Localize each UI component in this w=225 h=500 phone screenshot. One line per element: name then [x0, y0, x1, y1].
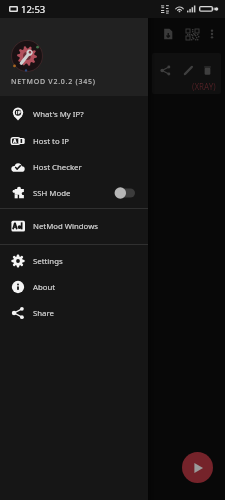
staticText: (XRAY): [192, 81, 216, 92]
button[interactable]: Settings: [0, 248, 148, 274]
button[interactable]: Import config: [157, 23, 179, 45]
button[interactable]: Edit: [180, 62, 196, 78]
button[interactable]: Host to IP: [0, 128, 148, 154]
button[interactable]: NetMod Windows: [0, 213, 148, 239]
staticText: What's My IP?: [33, 109, 84, 120]
button[interactable]: Delete: [199, 62, 215, 78]
staticText: Settings: [33, 256, 63, 267]
button[interactable]: More options: [201, 23, 223, 45]
button[interactable]: SSH Mode: [0, 180, 148, 206]
button[interactable]: Share: [152, 53, 221, 94]
staticText: NETMOD V2.0.2 (345): [11, 77, 96, 87]
staticText: About: [33, 282, 56, 293]
button[interactable]: Host Checker: [0, 154, 148, 180]
staticText: Host Checker: [33, 162, 82, 173]
button[interactable]: Share: [0, 300, 148, 326]
button[interactable]: Scan QR code: [181, 23, 203, 45]
staticText: NetMod Windows: [33, 221, 99, 232]
button[interactable]: Share: [157, 62, 173, 78]
staticText: Host to IP: [33, 136, 69, 147]
button[interactable]: About: [0, 274, 148, 300]
button[interactable]: Connect: [182, 452, 213, 483]
button[interactable]: What's My IP?: [0, 101, 148, 127]
staticText: SSH Mode: [33, 188, 71, 199]
staticText: Share: [33, 308, 54, 319]
staticText: 12:53: [21, 3, 46, 16]
